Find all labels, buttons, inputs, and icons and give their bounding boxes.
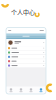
- button[interactable]: Home: [6, 86, 16, 94]
- button[interactable]: [6, 46, 46, 50]
- button[interactable]: [6, 63, 46, 68]
- staticText: 个人中心: [11, 8, 35, 16]
- button[interactable]: Profile: [36, 86, 46, 94]
- button[interactable]: Discover: [26, 86, 36, 94]
- button[interactable]: [6, 55, 46, 59]
- button[interactable]: [6, 50, 46, 55]
- button[interactable]: [6, 59, 46, 63]
- button[interactable]: Messages: [16, 86, 26, 94]
